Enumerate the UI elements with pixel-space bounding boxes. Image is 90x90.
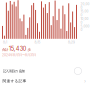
staticText: 15,000 xyxy=(80,10,88,17)
staticText: 8/29 xyxy=(68,40,75,44)
button[interactable]: 記入項目の追加 xyxy=(0,66,90,76)
staticText: 歩 xyxy=(27,47,30,52)
staticText: 20,000 xyxy=(80,2,89,10)
staticText: 関連する記事 xyxy=(2,79,26,83)
staticText: 15,430 xyxy=(9,45,27,52)
button[interactable]: 関連する記事 xyxy=(0,76,90,86)
staticText: 0 xyxy=(80,28,82,32)
staticText: 8/1 xyxy=(3,40,7,44)
staticText: 記入項目の追加 xyxy=(2,69,24,73)
staticText: 2024年8月1日〜8月31日 xyxy=(2,53,36,57)
staticText: 8/15 xyxy=(34,40,40,44)
staticText: 5,000 xyxy=(80,24,89,28)
staticText: 10,000 xyxy=(80,17,88,24)
staticText: › xyxy=(84,78,86,84)
staticText: 合計 xyxy=(2,47,8,52)
